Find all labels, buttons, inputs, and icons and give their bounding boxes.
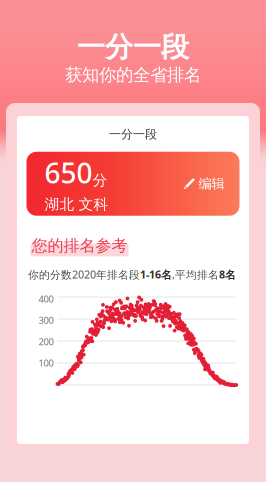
staticText: 您的排名参考 [31,236,127,255]
staticText: 650 [44,154,92,191]
staticText: 8名 [219,267,236,282]
staticText: 获知你的全省排名 [65,64,201,86]
staticText: 1-16名 [140,267,172,282]
staticText: 200 [38,335,53,348]
staticText: ,平均排名 [172,267,219,282]
button[interactable]: 编辑 [181,170,226,198]
staticText: 分 [92,171,107,189]
staticText: 你的分数2020年排名段 [28,267,140,282]
staticText: 一分一段 [109,127,157,142]
staticText: 编辑 [198,176,224,192]
staticText: 300 [38,314,53,326]
staticText: 100 [38,357,53,369]
staticText: 湖北 文科 [44,195,108,213]
staticText: 一分一段 [77,30,189,64]
staticText: 400 [38,293,53,305]
